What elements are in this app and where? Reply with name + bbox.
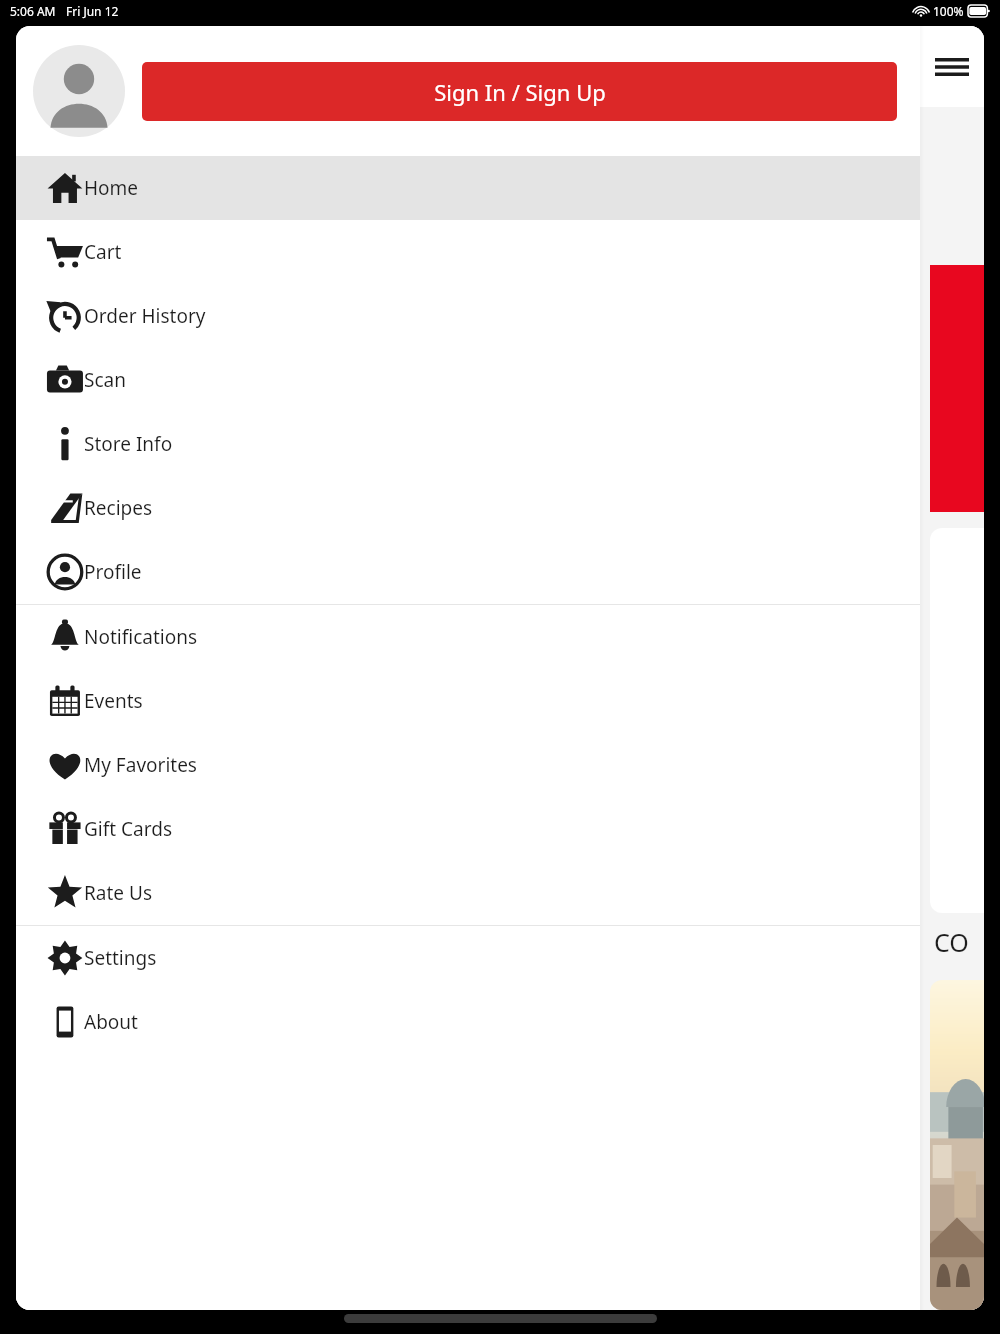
staticText: Notifications	[84, 624, 198, 650]
staticText: 100%	[933, 3, 964, 19]
button[interactable]: Recipes	[16, 476, 920, 540]
staticText: Recipes	[84, 495, 153, 521]
button[interactable]: Gift Cards	[16, 797, 920, 861]
staticText: Fri Jun 12	[66, 3, 119, 19]
staticText: Sign In / Sign Up	[434, 77, 606, 107]
button[interactable]: Rate Us	[16, 861, 920, 925]
button[interactable]: Home	[16, 156, 920, 220]
staticText: About	[84, 1009, 138, 1035]
staticText: 5:06 AM	[10, 3, 56, 19]
staticText: My Favorites	[84, 752, 197, 778]
button[interactable]: Settings	[16, 926, 920, 990]
staticText: Rate Us	[84, 880, 152, 906]
button[interactable]: Profile	[16, 540, 920, 604]
button[interactable]: My Favorites	[16, 733, 920, 797]
staticText: Order History	[84, 303, 206, 329]
button[interactable]: Events	[16, 669, 920, 733]
button[interactable]: About	[16, 990, 920, 1054]
staticText: COU	[934, 925, 984, 965]
button[interactable]: Order History	[16, 284, 920, 348]
button[interactable]: Scan	[16, 348, 920, 412]
staticText: Settings	[84, 945, 157, 971]
staticText: Events	[84, 688, 143, 714]
staticText: Gift Cards	[84, 816, 172, 842]
staticText: Scan	[84, 367, 126, 393]
staticText: Cart	[84, 239, 122, 265]
button[interactable]: Open navigation menu	[920, 26, 984, 107]
button[interactable]: Notifications	[16, 605, 920, 669]
staticText: Store Info	[84, 431, 173, 457]
staticText: Home	[84, 175, 139, 201]
button[interactable]: Store Info	[16, 412, 920, 476]
button[interactable]: Sign In / Sign Up	[142, 62, 897, 121]
button[interactable]: Cart	[16, 220, 920, 284]
staticText: Profile	[84, 559, 142, 585]
